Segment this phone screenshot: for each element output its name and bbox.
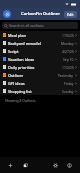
- staticText: Edit: [67, 12, 74, 17]
- staticText: Meal plan: [8, 33, 62, 38]
- button[interactable]: Outliner: [0, 71, 80, 79]
- staticText: Backyard remodel: [8, 41, 61, 46]
- button[interactable]: Backyard remodel: [0, 39, 80, 47]
- staticText: Shopping list: [8, 89, 62, 94]
- staticText: Sunday: [62, 89, 74, 93]
- button[interactable]: Edit: [64, 11, 77, 18]
- button[interactable]: Info: [65, 161, 74, 170]
- staticText: 4/27/25: [62, 49, 74, 53]
- staticText: Search in all outlines: [9, 23, 44, 28]
- button[interactable]: New folder: [21, 161, 30, 170]
- staticText: Outliner: [8, 73, 58, 78]
- staticText: CarbonFin Outliner: [21, 11, 60, 17]
- staticText: Yesterday: [58, 73, 74, 77]
- button[interactable]: Search in all outlines: [2, 22, 78, 29]
- button[interactable]: Shopping list: [0, 87, 80, 95]
- staticText: Monday: [61, 41, 74, 45]
- staticText: 11/2/25: [62, 65, 74, 69]
- button[interactable]: Script: [0, 47, 80, 55]
- button[interactable]: Settings: [51, 161, 60, 170]
- staticText: Vacation ideas: [8, 57, 63, 62]
- staticText: Showing 8 Outlines: [5, 98, 36, 103]
- button[interactable]: Add outline: [6, 161, 15, 170]
- staticText: Sep 10: [63, 57, 74, 61]
- button[interactable]: GFI ideas: [0, 79, 80, 87]
- button[interactable]: Meal plan: [0, 31, 80, 39]
- staticText: GFI ideas: [8, 81, 64, 86]
- button[interactable]: Vacation ideas: [0, 55, 80, 63]
- button[interactable]: Daily priorities: [0, 63, 80, 71]
- staticText: Daily priorities: [8, 65, 62, 70]
- staticText: 11/6/25: [62, 33, 74, 37]
- staticText: Script: [8, 49, 62, 54]
- staticText: Friday: [64, 81, 74, 85]
- button[interactable]: Sync: [3, 10, 11, 18]
